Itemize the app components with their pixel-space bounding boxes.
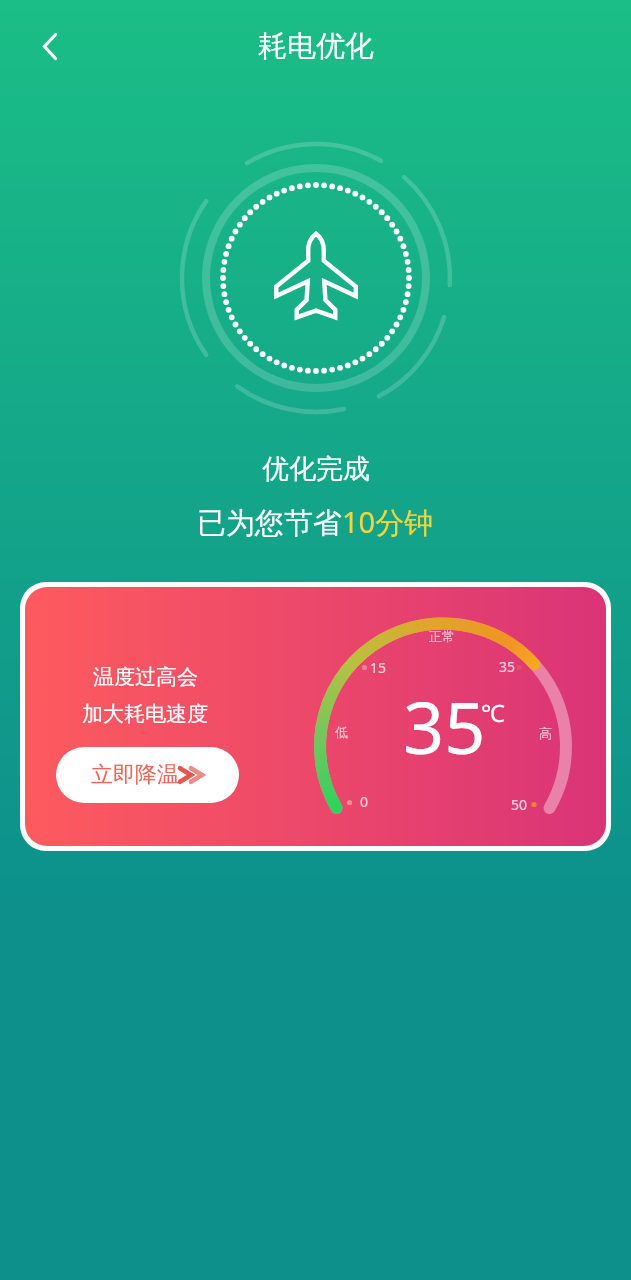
- staticText: 35: [403, 677, 486, 775]
- staticText: 已为您节省10分钟: [197, 502, 434, 542]
- staticText: 加大耗电速度: [82, 701, 208, 727]
- staticText: 15: [370, 658, 387, 677]
- staticText: 35: [499, 657, 516, 676]
- button[interactable]: 立即降温: [56, 747, 239, 803]
- staticText: 50: [511, 795, 528, 814]
- staticText: 温度过高会: [93, 664, 198, 690]
- staticText: 耗电优化: [258, 28, 374, 65]
- staticText: ℃: [481, 696, 505, 729]
- staticText: 立即降温: [91, 761, 179, 789]
- staticText: 优化完成: [262, 452, 370, 486]
- staticText: 0: [360, 792, 369, 811]
- button[interactable]: Back: [22, 18, 78, 74]
- staticText: 低: [335, 724, 348, 740]
- staticText: 高: [539, 725, 552, 741]
- staticText: 正常: [429, 628, 455, 644]
